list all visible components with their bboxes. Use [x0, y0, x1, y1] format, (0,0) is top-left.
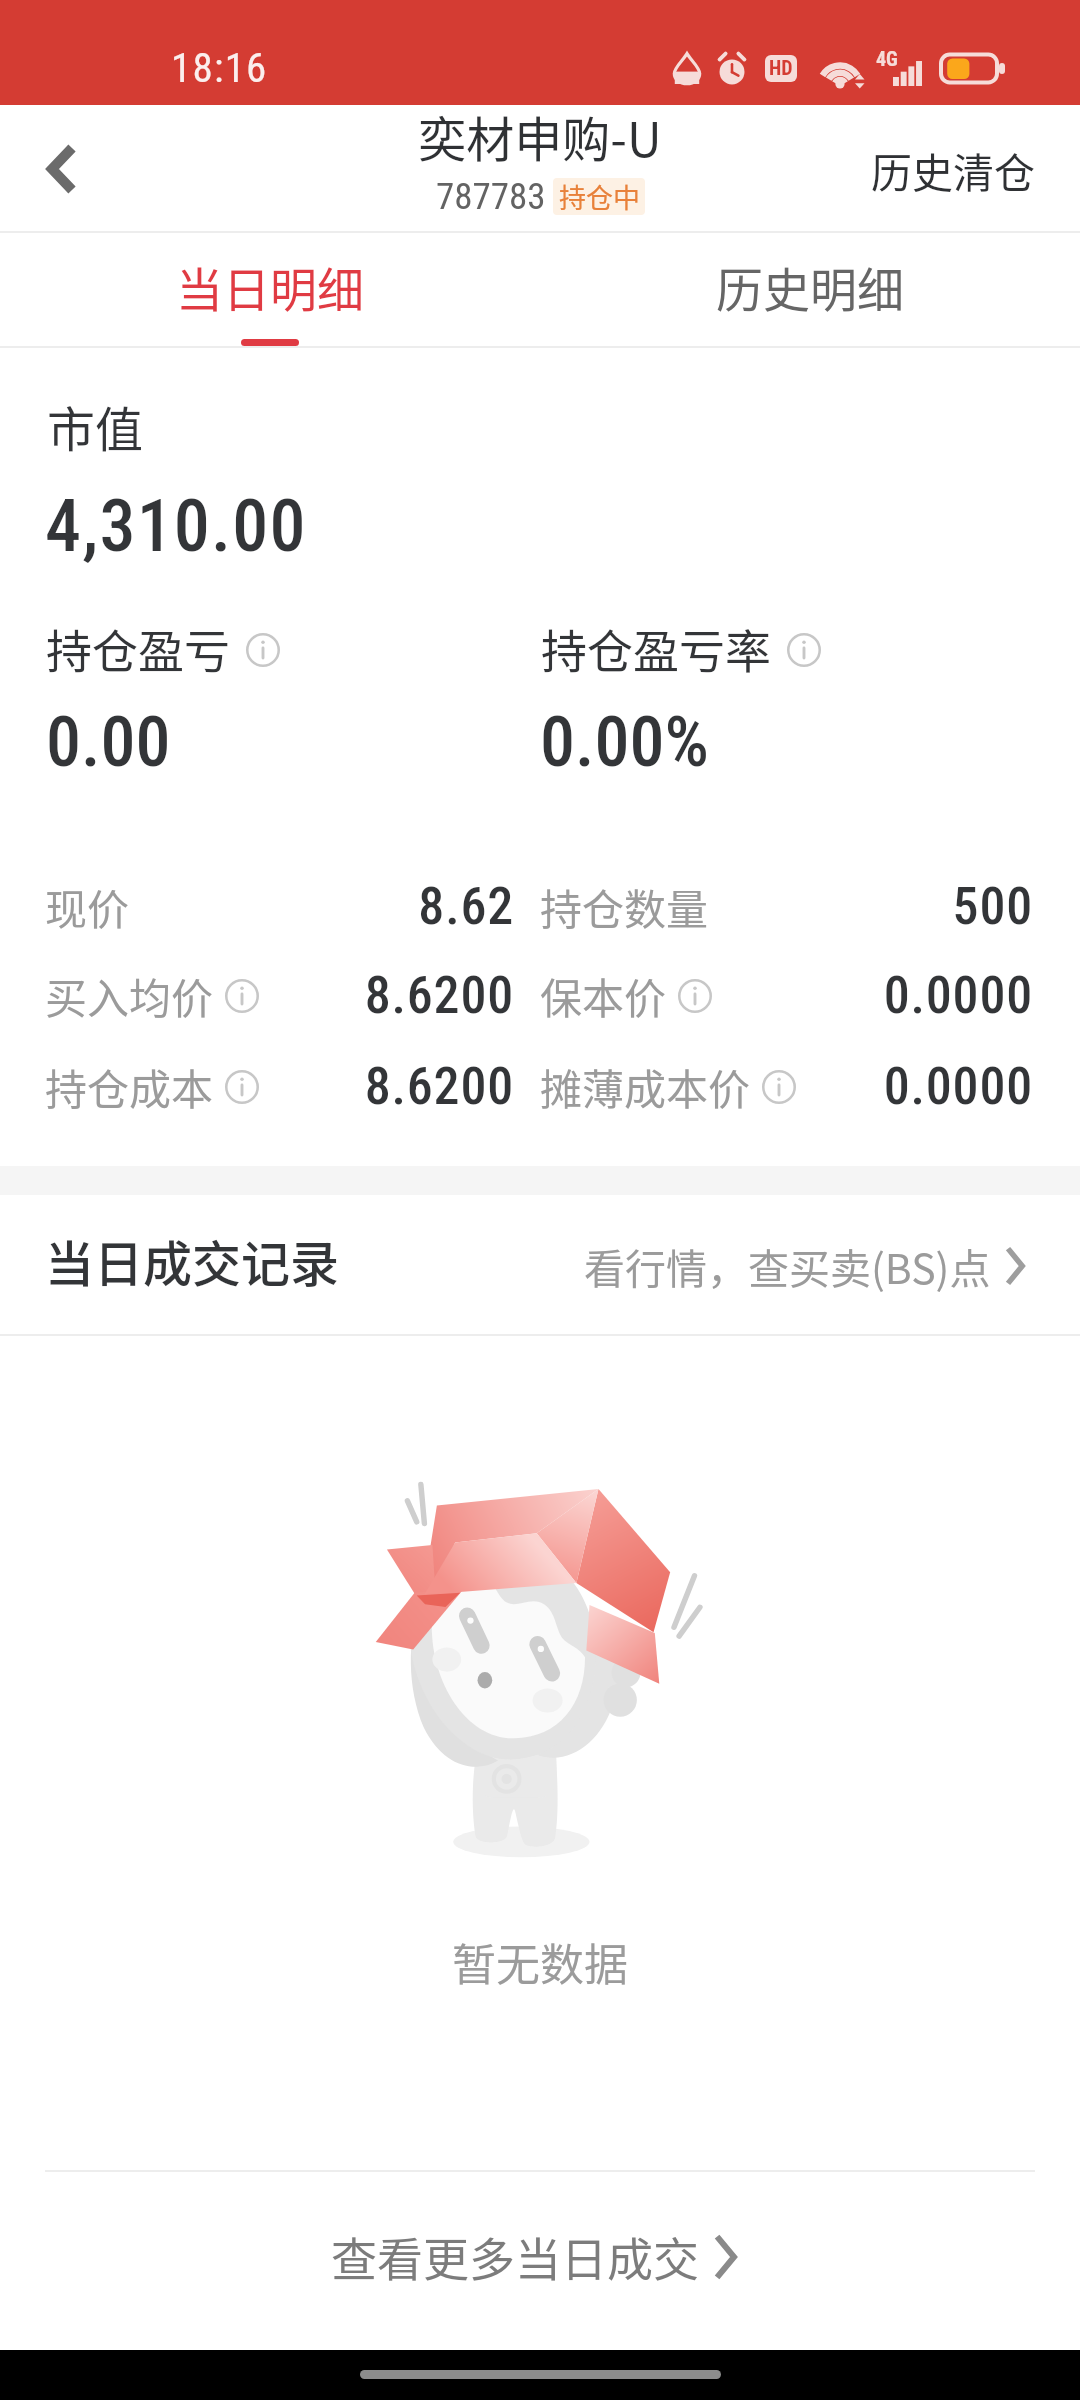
button[interactable]: 看行情，查买卖(BS)点: [554, 1214, 1080, 1317]
button[interactable]: 历史明细: [540, 232, 1080, 346]
staticText: 0.0000: [730, 1056, 1033, 1117]
staticText: 8.6200: [210, 1056, 514, 1117]
staticText: 8.62: [210, 876, 514, 937]
staticText: 500: [730, 876, 1033, 937]
staticText: 历史清仓: [871, 140, 1035, 199]
staticText: 买入均价: [45, 965, 214, 1026]
staticText: 0.00: [46, 701, 171, 783]
staticText: 奕材申购-U: [0, 101, 1080, 171]
staticText: 持仓中: [559, 178, 640, 214]
staticText: 看行情，查买卖(BS)点: [584, 1236, 991, 1295]
staticText: 0.0000: [730, 965, 1033, 1026]
staticText: HD: [769, 56, 793, 79]
staticText: 0.00%: [540, 701, 709, 783]
button[interactable]: 当日明细: [0, 232, 540, 346]
staticText: 查看更多当日成交: [331, 2223, 699, 2290]
staticText: 保本价: [540, 965, 667, 1026]
staticText: 当日明细: [176, 252, 364, 320]
staticText: 持仓盈亏率: [541, 615, 771, 682]
staticText: 当日成交记录: [45, 1225, 340, 1296]
staticText: 历史明细: [716, 252, 904, 320]
staticText: 市值: [47, 391, 144, 461]
staticText: 持仓数量: [540, 876, 709, 937]
button[interactable]: 历史清仓: [831, 110, 1080, 229]
staticText: 18:16: [171, 44, 268, 92]
staticText: 暂无数据: [0, 1930, 1080, 1994]
staticText: 现价: [45, 876, 130, 937]
button[interactable]: 查看更多当日成交: [0, 2172, 1080, 2350]
staticText: 持仓盈亏: [46, 615, 230, 682]
staticText: 4G: [876, 47, 898, 70]
staticText: 8.6200: [210, 965, 514, 1026]
staticText: 4,310.00: [45, 484, 307, 568]
button[interactable]: Back: [0, 105, 122, 232]
staticText: 摊薄成本价: [540, 1056, 751, 1117]
staticText: 787783: [436, 175, 546, 218]
staticText: 持仓成本: [45, 1056, 214, 1117]
